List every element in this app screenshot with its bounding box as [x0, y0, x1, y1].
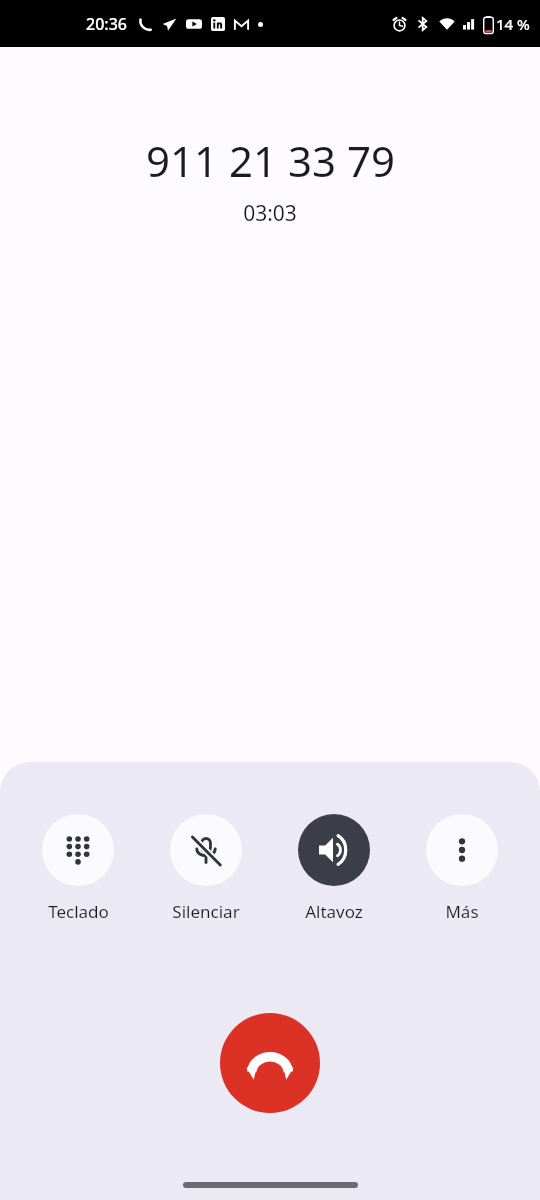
- staticText: 911 21 33 79: [146, 132, 395, 189]
- staticText: 14 %: [496, 14, 530, 34]
- button[interactable]: Más: [412, 814, 512, 923]
- staticText: Silenciar: [172, 900, 240, 923]
- staticText: Altavoz: [305, 900, 363, 923]
- staticText: Más: [445, 900, 479, 923]
- staticText: 20:36: [86, 13, 127, 35]
- button[interactable]: Teclado: [28, 814, 128, 923]
- staticText: Teclado: [48, 900, 109, 923]
- button[interactable]: Finalizar llamada: [220, 1013, 320, 1113]
- button[interactable]: Altavoz: [284, 814, 384, 923]
- button[interactable]: Silenciar: [156, 814, 256, 923]
- staticText: 03:03: [243, 199, 297, 228]
